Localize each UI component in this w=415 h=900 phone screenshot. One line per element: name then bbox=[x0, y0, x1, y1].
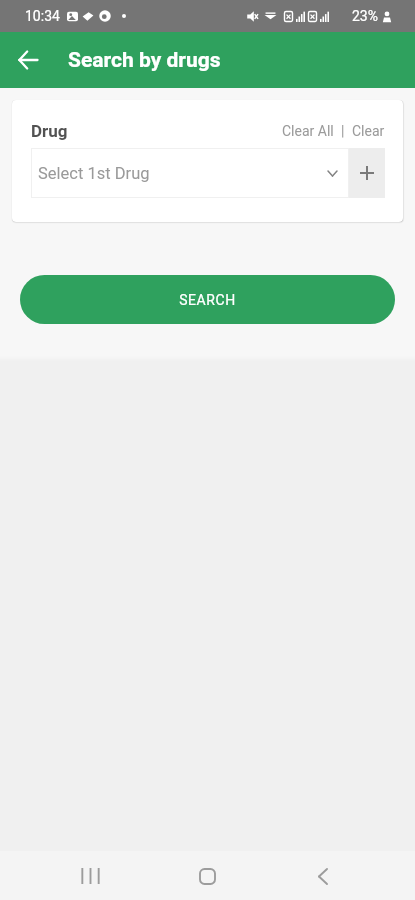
button[interactable]: Home bbox=[180, 851, 236, 900]
staticText: Select 1st Drug bbox=[38, 164, 150, 183]
button[interactable]: SEARCH bbox=[20, 275, 395, 324]
staticText: 23% bbox=[352, 8, 378, 24]
staticText: | bbox=[341, 123, 345, 139]
button[interactable]: Clear bbox=[352, 117, 385, 145]
staticText: Clear All bbox=[282, 123, 334, 139]
button[interactable]: Back bbox=[0, 32, 56, 88]
button[interactable]: Add drug bbox=[349, 148, 385, 198]
staticText: 10:34 bbox=[25, 8, 60, 24]
staticText: Drug bbox=[31, 121, 68, 141]
button[interactable]: Clear All bbox=[282, 117, 334, 145]
staticText: SEARCH bbox=[179, 292, 236, 308]
staticText: Search by drugs bbox=[68, 48, 221, 73]
button[interactable]: Recent apps bbox=[62, 851, 118, 900]
button[interactable]: Select 1st Drug bbox=[31, 148, 349, 198]
staticText: Clear bbox=[352, 123, 385, 139]
button[interactable]: Back bbox=[297, 851, 353, 900]
